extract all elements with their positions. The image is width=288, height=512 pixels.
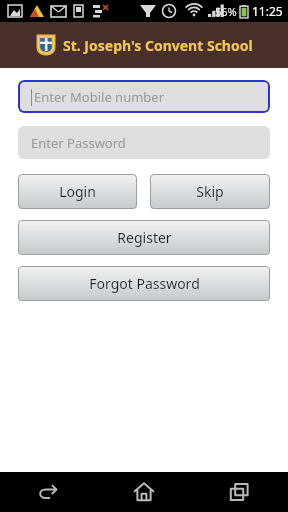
staticText: Enter Mobile number: [34, 88, 165, 106]
staticText: Forgot Password: [89, 274, 200, 293]
staticText: St. Joseph's Convent School: [63, 36, 253, 55]
staticText: Enter Password: [31, 134, 126, 152]
button[interactable]: Enter Mobile number: [18, 80, 270, 113]
staticText: Register: [117, 228, 172, 247]
staticText: Login: [59, 182, 96, 201]
button[interactable]: Forgot Password: [18, 266, 270, 301]
button[interactable]: Skip: [150, 174, 270, 209]
button[interactable]: Recent apps: [192, 472, 288, 512]
staticText: 56%: [215, 4, 237, 19]
button[interactable]: Register: [18, 220, 270, 255]
staticText: 11:25: [252, 3, 283, 19]
button[interactable]: Enter Password: [18, 126, 270, 159]
button[interactable]: Login: [18, 174, 137, 209]
staticText: Skip: [196, 182, 224, 201]
button[interactable]: Home: [96, 472, 192, 512]
button[interactable]: Back: [0, 472, 96, 512]
